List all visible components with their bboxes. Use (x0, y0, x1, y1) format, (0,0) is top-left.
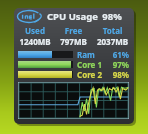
staticText: 98% (112, 69, 129, 79)
staticText: 1240MB (16, 36, 54, 47)
button[interactable]: Ram (18, 49, 129, 59)
button[interactable]: Total (93, 25, 132, 47)
staticText: Core 2 (77, 69, 112, 79)
button[interactable]: Core 1 (18, 59, 129, 69)
other: Intel logo (17, 10, 45, 23)
staticText: 2037MB (93, 36, 132, 47)
staticText: 797MB (54, 36, 93, 47)
button[interactable] (19, 83, 128, 118)
staticText: Ram (77, 49, 112, 59)
staticText: Free (54, 25, 93, 36)
staticText: Total (93, 25, 132, 36)
button[interactable]: Intel logo (14, 8, 134, 124)
button[interactable]: Used (16, 25, 54, 47)
staticText: Used (16, 25, 54, 36)
button[interactable]: Free (54, 25, 93, 47)
staticText: 98% (102, 10, 122, 23)
button[interactable]: Core 2 (18, 69, 129, 79)
staticText: CPU Usage (47, 10, 98, 23)
staticText: 61% (112, 49, 129, 59)
staticText: 97% (112, 59, 129, 69)
staticText: Core 1 (77, 59, 112, 69)
